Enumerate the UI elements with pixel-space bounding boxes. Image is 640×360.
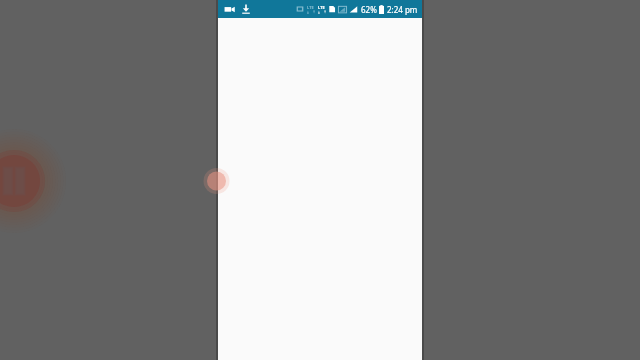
button[interactable]: Screen recorder [222,2,236,16]
staticText: 2:24 pm [387,4,418,15]
staticText: LTE [318,5,325,10]
staticText: 62% [361,4,377,15]
button[interactable]: Download [239,2,253,16]
staticText: LTE [307,5,314,10]
